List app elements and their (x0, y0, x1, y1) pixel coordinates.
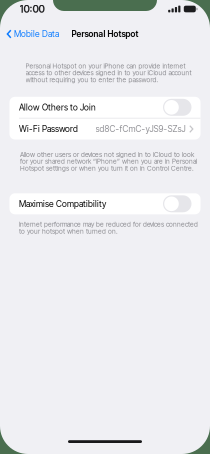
staticText: Personal Hotspot on your iPhone can prov… (25, 62, 191, 84)
button[interactable]: Mobile Data (0, 26, 63, 42)
button[interactable]: Allow Others to Join (9, 97, 200, 118)
button[interactable]: Wi-Fi Password (9, 118, 200, 139)
staticText: Mobile Data (14, 29, 59, 39)
staticText: Personal Hotspot (71, 29, 138, 39)
staticText: Internet performance may be reduced for … (19, 220, 198, 235)
staticText: Wi-Fi Password (19, 124, 78, 134)
staticText: 10:00 (19, 3, 44, 15)
staticText: Allow Others to Join (19, 102, 96, 112)
staticText: Maximise Compatibility (19, 199, 106, 209)
button[interactable]: Maximise Compatibility (9, 193, 200, 214)
staticText: sd8C-fCmC-yJS9-SZsJ (96, 124, 186, 134)
staticText: Allow other users or devices not signed … (20, 150, 197, 172)
